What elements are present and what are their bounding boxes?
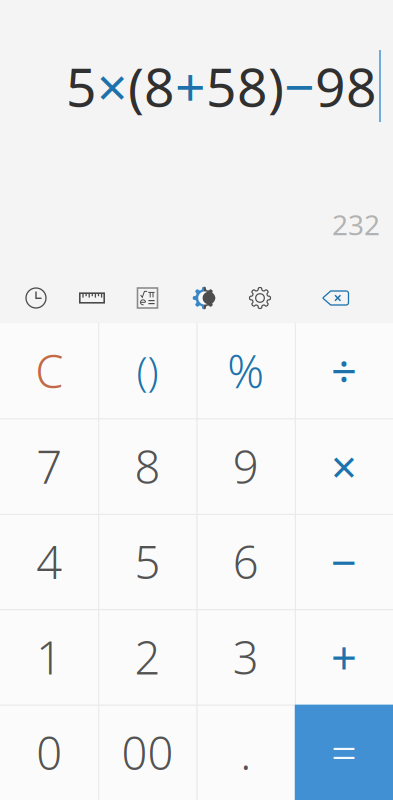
button[interactable]: = [295, 705, 393, 800]
staticText: 8 [134, 436, 160, 496]
button[interactable]: 6 [196, 514, 295, 609]
staticText: × [97, 51, 128, 121]
button[interactable]: Settings [232, 279, 288, 317]
staticText: ÷ [331, 341, 357, 401]
staticText: 3 [233, 627, 259, 687]
button[interactable]: 9 [196, 418, 295, 514]
staticText: 4 [36, 531, 62, 592]
button[interactable]: Theme [176, 279, 232, 317]
staticText: + [175, 51, 206, 121]
staticText: − [284, 51, 315, 121]
staticText: 98 [315, 51, 377, 121]
staticText: 7 [36, 436, 62, 496]
button[interactable]: Backspace [306, 279, 366, 317]
button[interactable]: History [8, 279, 64, 317]
button[interactable]: + [295, 609, 393, 705]
button[interactable]: ÷ [295, 323, 393, 418]
button[interactable]: 8 [98, 418, 196, 514]
staticText: 6 [233, 531, 259, 592]
staticText: 0 [36, 722, 62, 782]
staticText: C [35, 341, 63, 401]
staticText: () [136, 344, 158, 397]
staticText: = [331, 722, 357, 782]
staticText: 9 [233, 436, 259, 496]
staticText: 5 [134, 531, 160, 592]
button[interactable]: % [196, 323, 295, 418]
button[interactable]: × [295, 418, 393, 514]
staticText: . [240, 722, 251, 782]
button[interactable]: 2 [98, 609, 196, 705]
button[interactable]: Unit converter [64, 279, 120, 317]
button[interactable]: C [0, 323, 98, 418]
button[interactable]: 0 [0, 705, 98, 800]
staticText: 232 [332, 206, 380, 243]
staticText: − [331, 531, 357, 592]
staticText: (8 [128, 51, 175, 121]
button[interactable]: . [196, 705, 295, 800]
staticText: 2 [134, 627, 160, 687]
button[interactable]: 1 [0, 609, 98, 705]
button[interactable]: 00 [98, 705, 196, 800]
button[interactable]: () [98, 323, 196, 418]
staticText: × [331, 436, 357, 496]
button[interactable]: 3 [196, 609, 295, 705]
staticText: % [227, 341, 264, 401]
staticText: 00 [121, 722, 173, 782]
staticText: + [331, 627, 357, 687]
button[interactable]: − [295, 514, 393, 609]
button[interactable]: Scientific [120, 279, 176, 317]
staticText: 1 [36, 627, 62, 687]
button[interactable]: 7 [0, 418, 98, 514]
staticText: 5 [66, 51, 97, 121]
button[interactable]: 4 [0, 514, 98, 609]
button[interactable]: 5 [98, 514, 196, 609]
staticText: 58) [206, 51, 284, 121]
